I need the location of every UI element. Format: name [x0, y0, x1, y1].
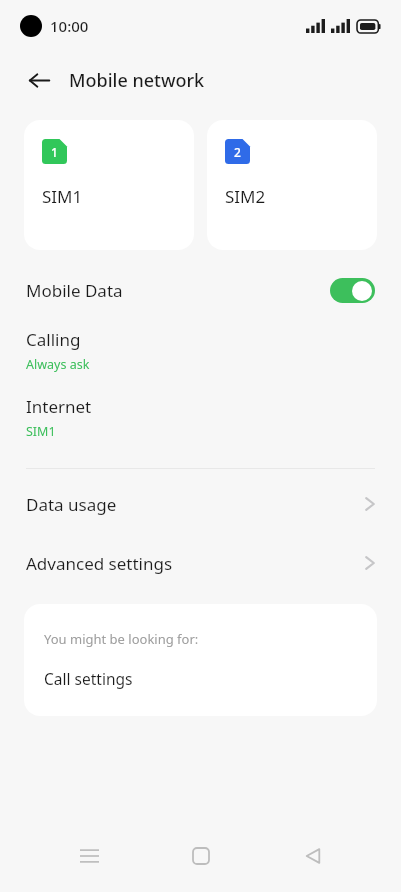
- staticText: 1: [51, 144, 58, 160]
- staticText: SIM2: [225, 185, 266, 208]
- staticText: SIM1: [26, 423, 56, 440]
- button[interactable]: Home: [177, 832, 225, 880]
- button[interactable]: Recent apps: [65, 832, 113, 880]
- staticText: Internet: [26, 395, 92, 418]
- button[interactable]: Mobile Data toggle: [330, 278, 375, 303]
- button[interactable]: Mobile Data: [0, 268, 401, 312]
- staticText: 10:00: [50, 16, 89, 36]
- staticText: You might be looking for:: [44, 630, 199, 648]
- button[interactable]: Call settings: [44, 668, 133, 689]
- button[interactable]: Back: [22, 63, 56, 97]
- button[interactable]: 2: [207, 120, 377, 250]
- button[interactable]: 1: [24, 120, 194, 250]
- staticText: Mobile Data: [26, 279, 123, 302]
- button[interactable]: Data usage: [0, 489, 401, 519]
- staticText: Call settings: [44, 668, 133, 689]
- staticText: Mobile network: [69, 68, 205, 93]
- staticText: SIM1: [42, 185, 83, 208]
- staticText: 2: [234, 144, 241, 160]
- button[interactable]: Advanced settings: [0, 548, 401, 578]
- staticText: Always ask: [26, 356, 90, 373]
- staticText: Advanced settings: [26, 552, 173, 575]
- staticText: Data usage: [26, 493, 117, 516]
- button[interactable]: Calling: [0, 328, 401, 373]
- button[interactable]: Back: [289, 832, 337, 880]
- button[interactable]: Internet: [0, 395, 401, 440]
- staticText: Calling: [26, 328, 81, 351]
